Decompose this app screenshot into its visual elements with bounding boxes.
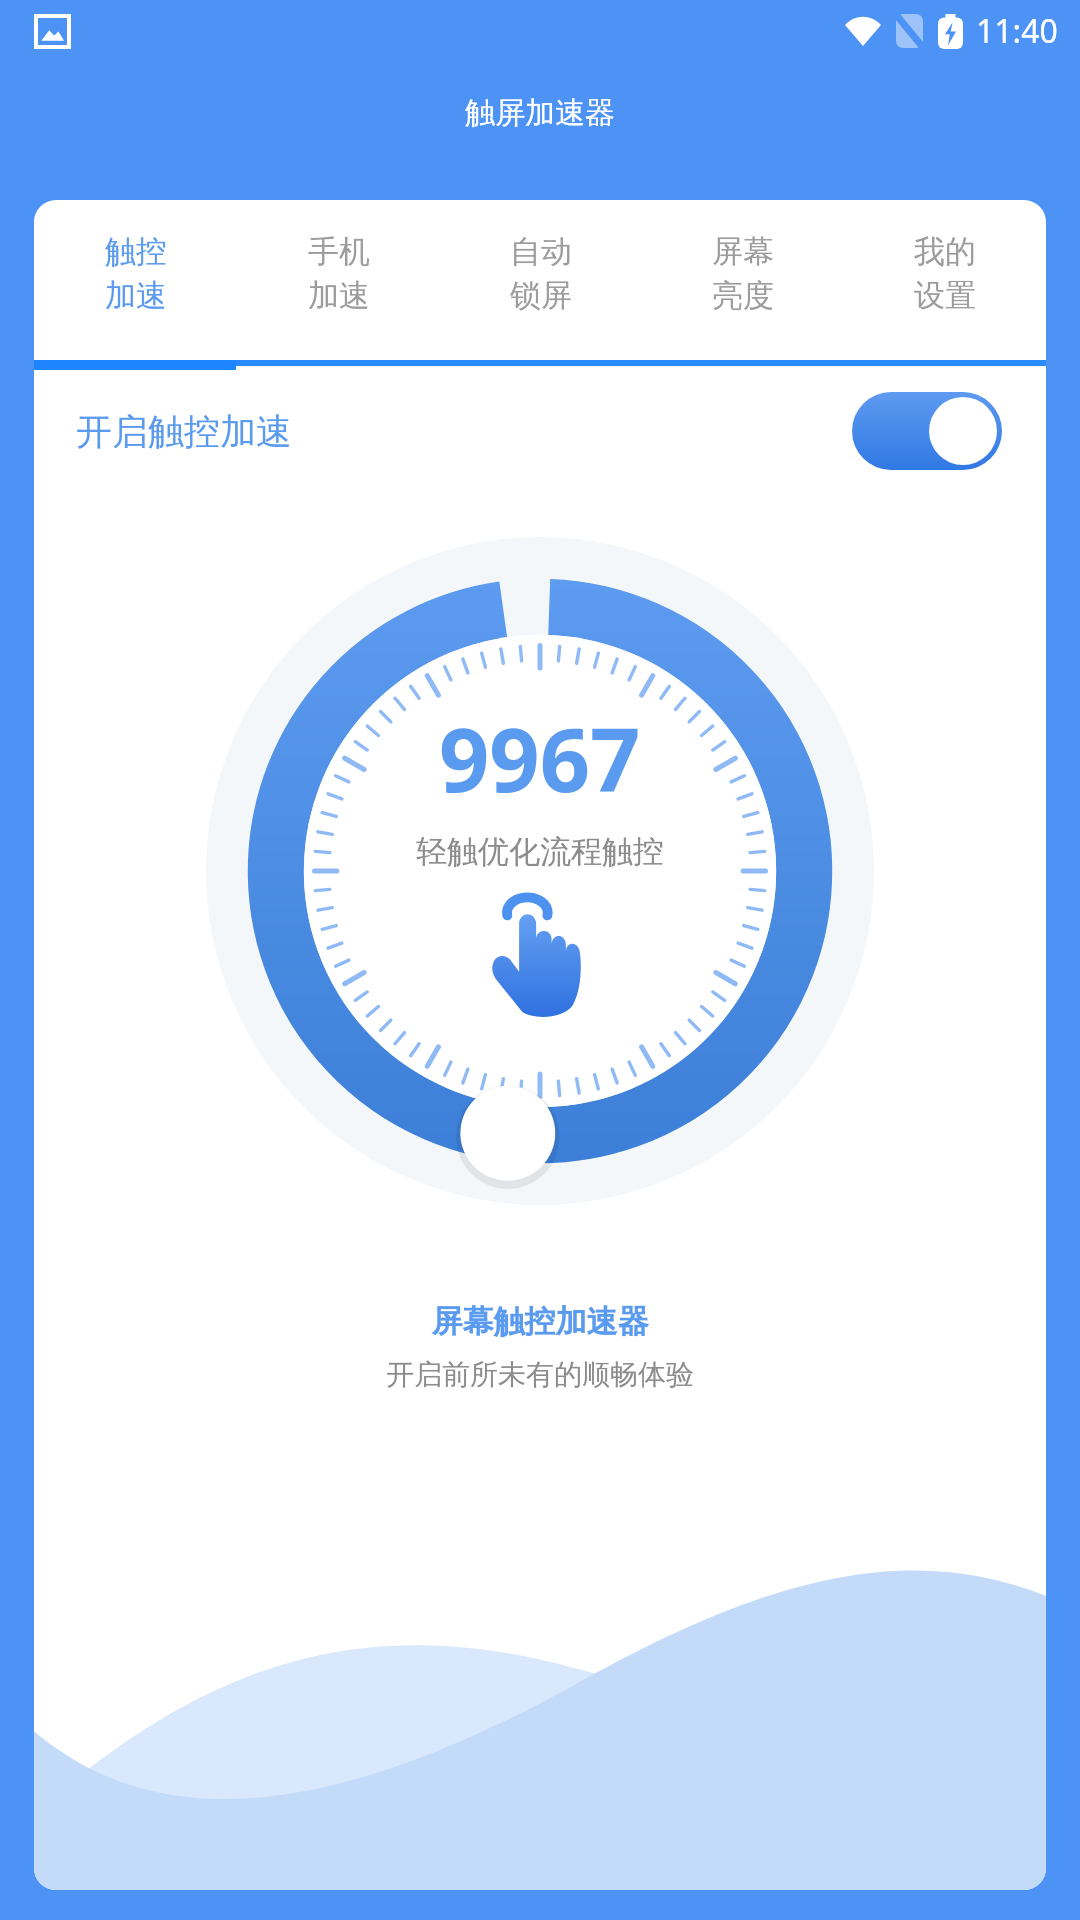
- staticText: 亮度: [712, 276, 774, 315]
- other: 开启触控加速开关: [852, 392, 1002, 470]
- button[interactable]: 开启触控加速: [34, 370, 1046, 492]
- staticText: 设置: [914, 276, 976, 315]
- staticText: 9967: [439, 698, 641, 818]
- staticText: 屏幕触控加速器: [34, 1302, 1046, 1341]
- staticText: 开启触控加速: [76, 409, 292, 454]
- button[interactable]: 我的: [844, 200, 1046, 360]
- staticText: 触屏加速器: [465, 94, 615, 132]
- staticText: 触控: [105, 232, 167, 271]
- button[interactable]: 触控: [34, 200, 237, 360]
- button[interactable]: 手机: [237, 200, 440, 360]
- staticText: 我的: [914, 232, 976, 271]
- staticText: 自动: [510, 232, 572, 271]
- staticText: 11:40: [976, 9, 1058, 53]
- staticText: 屏幕: [712, 232, 774, 271]
- staticText: 加速: [308, 276, 370, 315]
- button[interactable]: 屏幕: [642, 200, 844, 360]
- staticText: 加速: [105, 276, 167, 315]
- staticText: 锁屏: [510, 276, 572, 315]
- staticText: 轻触优化流程触控: [416, 832, 664, 871]
- button[interactable]: 自动: [440, 200, 642, 360]
- other: 轻触: [485, 895, 595, 1017]
- staticText: 开启前所未有的顺畅体验: [34, 1357, 1046, 1392]
- staticText: 手机: [308, 232, 370, 271]
